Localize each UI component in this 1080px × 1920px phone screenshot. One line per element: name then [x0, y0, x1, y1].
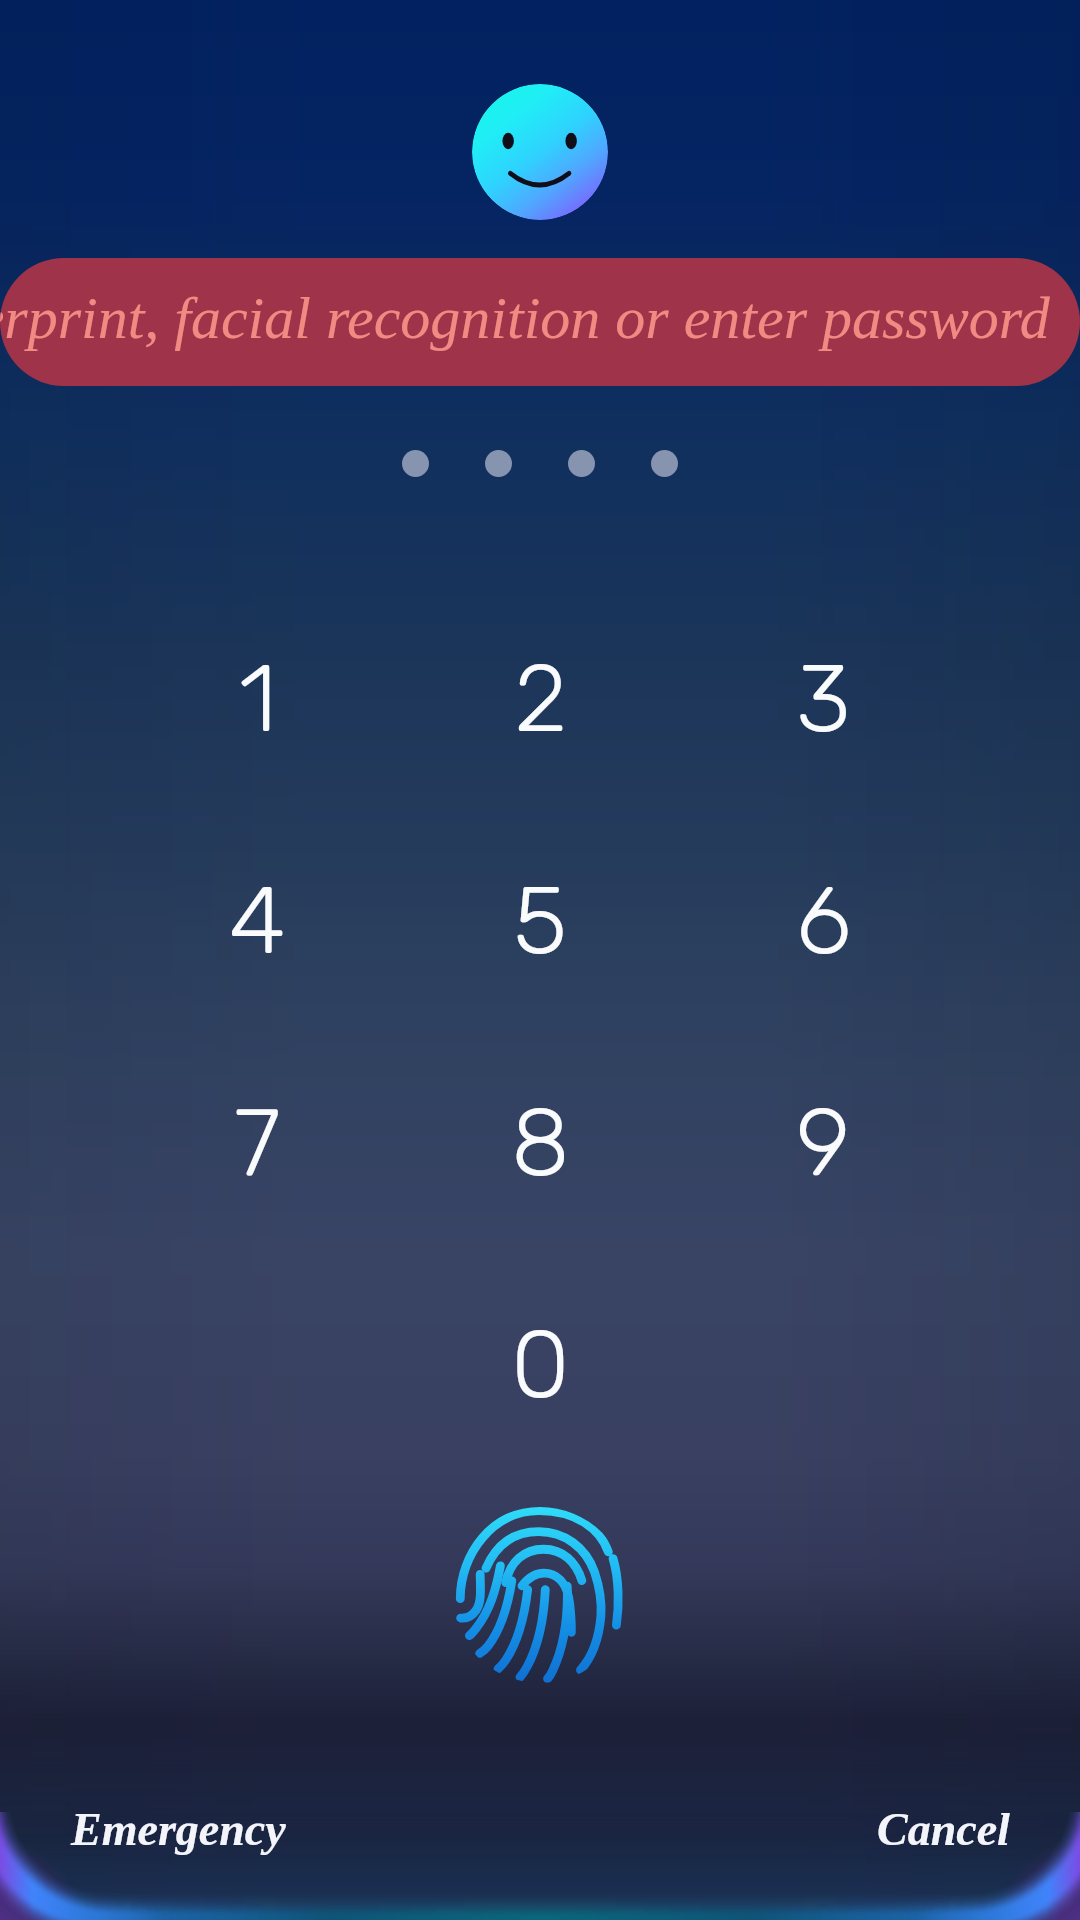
staticText: 5: [513, 864, 568, 977]
staticText: 9: [796, 1086, 851, 1199]
button[interactable]: Use fingerprint, facial recognition or e…: [0, 258, 1080, 386]
button[interactable]: Unlock with fingerprint: [452, 1507, 628, 1683]
staticText: Emergency: [71, 1804, 286, 1855]
button[interactable]: 0: [399, 1253, 682, 1475]
button[interactable]: 3: [682, 587, 965, 809]
button[interactable]: Emergency: [0, 1782, 310, 1877]
button[interactable]: 7: [116, 1031, 399, 1253]
staticText: 3: [796, 642, 851, 755]
button[interactable]: 1: [116, 587, 399, 809]
staticText: Cancel: [877, 1804, 1010, 1855]
button[interactable]: 4: [116, 809, 399, 1031]
button[interactable]: 2: [399, 587, 682, 809]
staticText: 7: [234, 1086, 281, 1199]
staticText: 0: [511, 1308, 570, 1421]
button[interactable]: 5: [399, 809, 682, 1031]
button[interactable]: 6: [682, 809, 965, 1031]
staticText: 8: [511, 1086, 570, 1199]
button[interactable]: 8: [399, 1031, 682, 1253]
staticText: 6: [796, 864, 852, 977]
button[interactable]: Cancel: [853, 1782, 1080, 1877]
staticText: Use fingerprint, facial recognition or e…: [0, 285, 1050, 351]
staticText: 2: [514, 642, 568, 755]
button[interactable]: 9: [682, 1031, 965, 1253]
button[interactable]: User avatar: [472, 84, 608, 220]
staticText: 4: [229, 864, 286, 977]
staticText: 1: [239, 642, 277, 755]
